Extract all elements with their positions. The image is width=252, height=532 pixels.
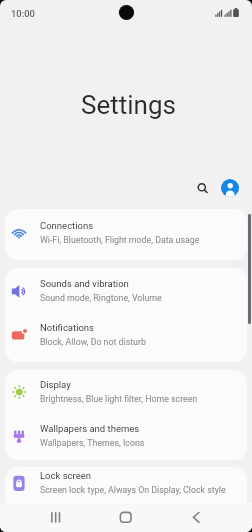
staticText: Wallpapers, Themes, Icons — [40, 438, 145, 448]
staticText: Block, Allow, Do not disturb — [40, 337, 146, 347]
button[interactable]: Lock screen — [5, 459, 247, 503]
staticText: Notifications — [40, 322, 95, 333]
button[interactable]: Connections — [5, 209, 247, 253]
button[interactable] — [221, 179, 239, 197]
staticText: Settings — [81, 90, 176, 120]
button[interactable]: Notifications — [5, 311, 247, 355]
staticText: Lock screen — [40, 470, 92, 481]
staticText: Wi-Fi, Bluetooth, Flight mode, Data usag… — [40, 235, 200, 245]
button[interactable] — [194, 179, 211, 196]
button[interactable]: Sounds and vibration — [5, 267, 247, 311]
button[interactable] — [102, 503, 150, 532]
staticText: Sounds and vibration — [40, 278, 129, 289]
staticText: Wallpapers and themes — [40, 423, 140, 434]
button[interactable] — [172, 503, 220, 532]
staticText: Brightness, Blue light filter, Home scre… — [40, 394, 198, 404]
button[interactable]: Wallpapers and themes — [5, 412, 247, 456]
staticText: Sound mode, Ringtone, Volume — [40, 293, 162, 303]
staticText: Connections — [40, 220, 94, 231]
button[interactable]: Display — [5, 368, 247, 412]
staticText: 10:00 — [11, 8, 35, 19]
staticText: Display — [40, 379, 71, 390]
button[interactable] — [36, 503, 84, 532]
staticText: Screen lock type, Always On Display, Clo… — [40, 485, 226, 495]
